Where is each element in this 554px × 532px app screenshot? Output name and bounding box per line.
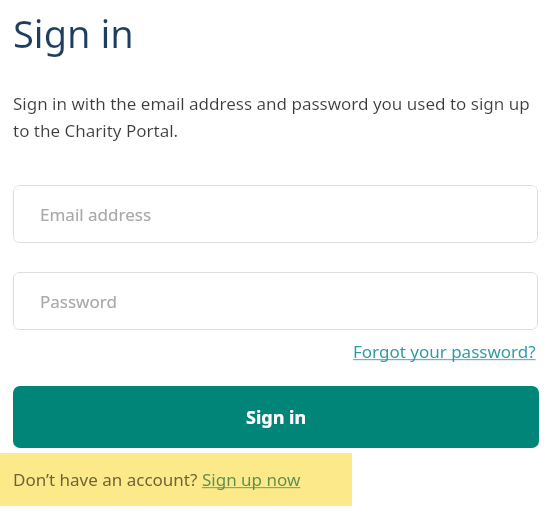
staticText: Email address — [40, 203, 152, 226]
button[interactable]: Forgot your password? — [351, 338, 538, 365]
button[interactable]: Email address — [13, 185, 538, 243]
staticText: Don’t have an account? — [13, 468, 202, 491]
staticText: Password — [40, 290, 117, 313]
button[interactable]: Password — [13, 272, 538, 330]
staticText: Sign in — [13, 7, 134, 59]
staticText: Sign in with the email address and passw… — [13, 92, 538, 142]
staticText: Sign up now — [202, 468, 301, 491]
staticText: Sign in — [246, 405, 307, 430]
button[interactable]: Sign in — [13, 386, 539, 448]
staticText: Forgot your password? — [353, 340, 536, 363]
button[interactable]: Sign up now — [202, 468, 301, 491]
